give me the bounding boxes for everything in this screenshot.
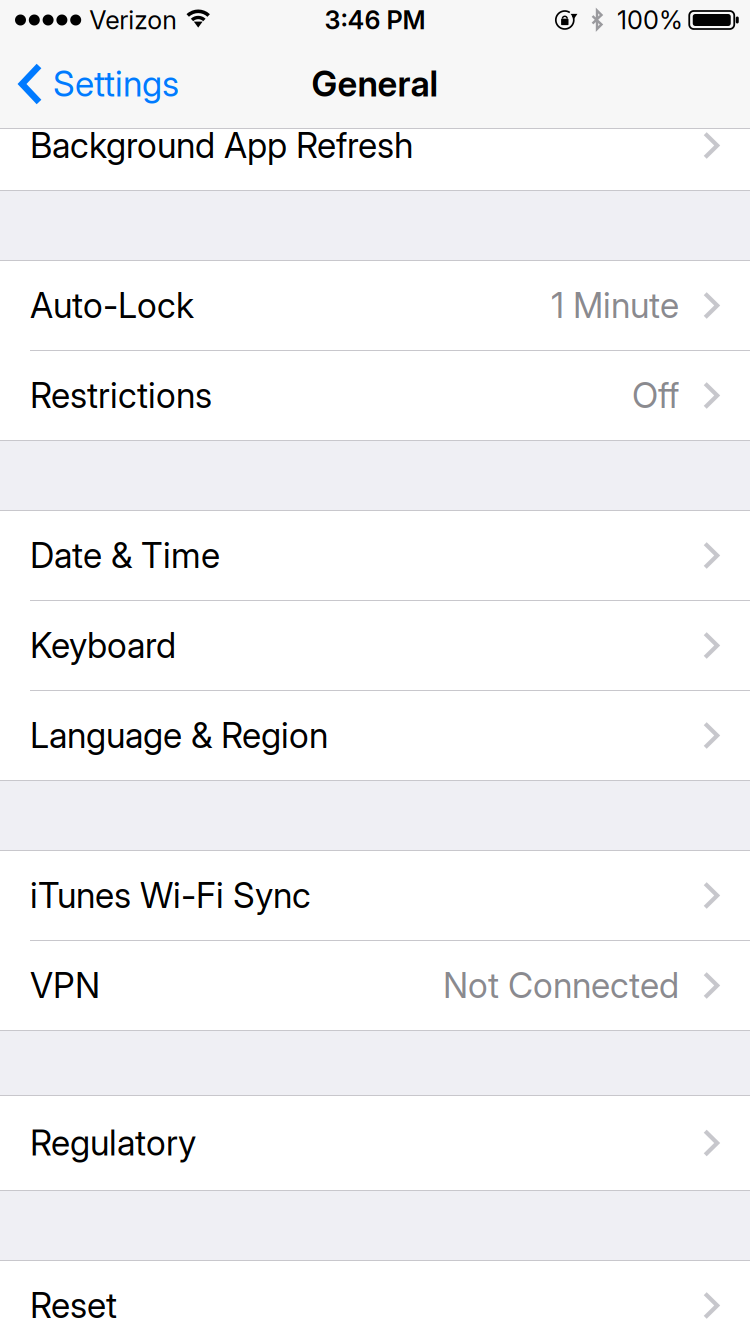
staticText: Regulatory — [30, 1122, 196, 1164]
staticText: VPN — [30, 964, 100, 1006]
button[interactable]: Background App Refresh — [0, 129, 750, 190]
button[interactable]: Keyboard — [0, 601, 750, 690]
button[interactable]: Settings — [0, 40, 189, 128]
staticText: Restrictions — [30, 374, 212, 416]
button[interactable]: Regulatory — [0, 1096, 750, 1190]
staticText: Background App Refresh — [30, 124, 413, 166]
staticText: Settings — [53, 63, 179, 105]
button[interactable]: Date & Time — [0, 511, 750, 600]
button[interactable]: VPN — [0, 941, 750, 1030]
staticText: Keyboard — [30, 624, 176, 666]
staticText: iTunes Wi-Fi Sync — [30, 874, 311, 916]
staticText: Off — [632, 374, 679, 416]
button[interactable]: Language & Region — [0, 691, 750, 780]
staticText: Date & Time — [30, 534, 220, 576]
button[interactable]: Reset — [0, 1261, 750, 1334]
button[interactable]: Auto-Lock — [0, 261, 750, 350]
staticText: Reset — [30, 1284, 117, 1326]
button[interactable]: Restrictions — [0, 351, 750, 440]
staticText: Not Connected — [443, 964, 679, 1006]
staticText: 3:46 PM — [324, 5, 425, 35]
staticText: 1 Minute — [551, 284, 679, 326]
staticText: Auto-Lock — [30, 284, 194, 326]
button[interactable]: iTunes Wi-Fi Sync — [0, 851, 750, 940]
staticText: Verizon — [89, 5, 177, 35]
staticText: General — [311, 63, 438, 105]
staticText: 100% — [617, 5, 683, 35]
staticText: Language & Region — [30, 714, 328, 756]
